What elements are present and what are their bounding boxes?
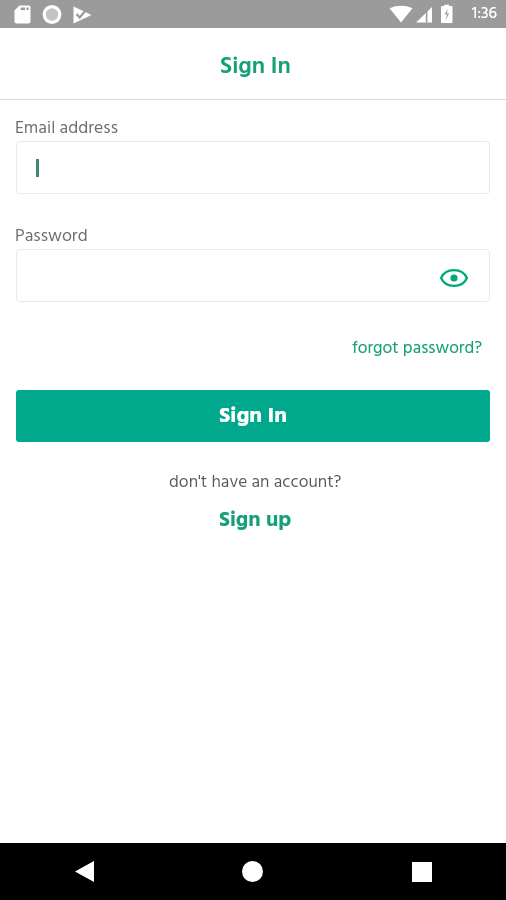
button[interactable]: Back bbox=[0, 843, 168, 900]
button[interactable]: forgot password? bbox=[352, 335, 483, 363]
button[interactable]: Home bbox=[168, 843, 337, 900]
button[interactable]: Show password bbox=[437, 261, 471, 295]
staticText: don't have an account? bbox=[169, 469, 342, 497]
staticText: Sign In bbox=[219, 399, 287, 434]
button[interactable] bbox=[16, 141, 490, 194]
button[interactable]: Show password bbox=[16, 249, 490, 302]
staticText: Email address bbox=[15, 114, 118, 142]
staticText: Password bbox=[15, 222, 88, 250]
staticText: Sign In bbox=[220, 48, 291, 86]
staticText: Sign up bbox=[219, 504, 292, 538]
staticText: forgot password? bbox=[352, 335, 483, 363]
button[interactable]: Sign In bbox=[16, 390, 490, 442]
button[interactable]: Recent apps bbox=[337, 843, 506, 900]
button[interactable]: Sign up bbox=[219, 504, 292, 538]
staticText: 1:36 bbox=[472, 1, 497, 27]
